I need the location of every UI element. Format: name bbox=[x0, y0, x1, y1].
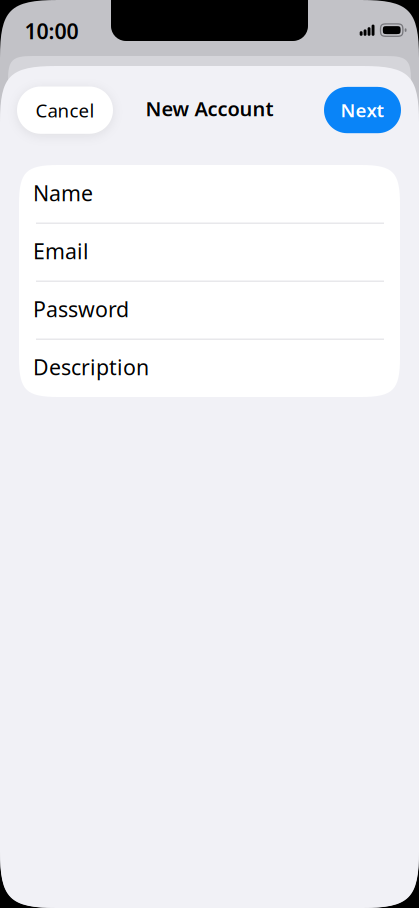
button[interactable]: Cancel bbox=[17, 86, 113, 134]
button[interactable]: Next bbox=[324, 87, 401, 133]
staticText: Description bbox=[33, 353, 149, 381]
button[interactable]: Description bbox=[19, 338, 400, 396]
staticText: Name bbox=[33, 179, 93, 207]
button[interactable]: Password bbox=[19, 280, 400, 338]
button[interactable]: Email bbox=[19, 222, 400, 280]
staticText: Cancel bbox=[35, 98, 94, 123]
staticText: Next bbox=[340, 98, 384, 122]
staticText: 10:00 bbox=[24, 17, 78, 45]
staticText: Password bbox=[33, 295, 129, 323]
button[interactable]: Name bbox=[19, 164, 400, 222]
staticText: New Account bbox=[145, 95, 273, 122]
staticText: Email bbox=[33, 237, 89, 265]
